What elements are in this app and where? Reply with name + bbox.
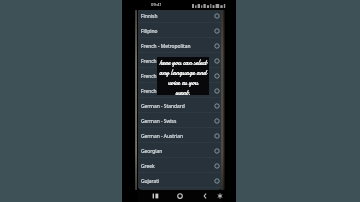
staticText: Filipino: [141, 28, 158, 35]
staticText: German - Austrian: [141, 133, 184, 140]
button[interactable]: German - Standard: [138, 98, 222, 113]
staticText: German - Standard: [141, 103, 185, 110]
staticText: Greek: [141, 163, 155, 170]
button[interactable]: Georgian: [138, 143, 222, 158]
button[interactable]: French: [138, 53, 222, 68]
button[interactable]: French: [138, 68, 222, 83]
staticText: Finnish: [141, 13, 158, 20]
button[interactable]: German - Swiss: [138, 113, 222, 128]
button[interactable]: Assistant: [215, 190, 225, 202]
staticText: here you can select any language and voi…: [157, 58, 209, 96]
button[interactable]: Recent apps: [151, 190, 161, 202]
button[interactable]: Back: [200, 190, 210, 202]
button[interactable]: Finnish: [138, 10, 222, 23]
staticText: French: [141, 88, 157, 95]
staticText: French - Metropolitan: [141, 43, 191, 50]
button[interactable]: Filipino: [138, 23, 222, 38]
button[interactable]: German - Austrian: [138, 128, 222, 143]
button[interactable]: Home: [175, 190, 185, 202]
staticText: Gujarati: [141, 178, 160, 185]
staticText: French: [141, 73, 157, 80]
button[interactable]: French: [138, 83, 222, 98]
button[interactable]: French - Metropolitan: [138, 38, 222, 53]
button[interactable]: Gujarati: [138, 173, 222, 188]
staticText: Georgian: [141, 148, 163, 155]
staticText: 09:41: [151, 2, 162, 8]
staticText: French: [141, 58, 157, 65]
staticText: German - Swiss: [141, 118, 177, 125]
button[interactable]: Greek: [138, 158, 222, 173]
